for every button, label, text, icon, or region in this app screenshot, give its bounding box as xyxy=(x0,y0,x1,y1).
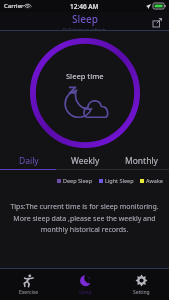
staticText: Pull down to refresh xyxy=(63,27,106,31)
staticText: Sleep xyxy=(79,289,92,296)
staticText: Awake xyxy=(146,177,163,184)
staticText: Monthly xyxy=(125,155,158,167)
staticText: 12:46 AM xyxy=(70,2,99,11)
button[interactable]: Weekly xyxy=(57,153,113,169)
button[interactable]: Daily xyxy=(0,153,57,169)
button[interactable]: Sleep xyxy=(57,269,113,300)
staticText: Deep Sleep xyxy=(63,177,93,184)
staticText: Exercise xyxy=(19,289,39,296)
staticText: Tips:The current time is for sleep monit… xyxy=(8,202,161,234)
staticText: Daily xyxy=(19,155,39,167)
button[interactable]: Share xyxy=(150,15,164,29)
staticText: Sleep time xyxy=(66,71,104,81)
button[interactable]: Exercise xyxy=(0,269,57,300)
button[interactable]: Monthly xyxy=(113,153,169,169)
staticText: Setting xyxy=(133,289,150,296)
staticText: Weekly xyxy=(71,155,100,167)
button[interactable]: Setting xyxy=(113,269,169,300)
staticText: Carrier xyxy=(4,2,24,10)
staticText: Sleep xyxy=(72,12,98,26)
staticText: Light Sleep xyxy=(105,177,134,184)
